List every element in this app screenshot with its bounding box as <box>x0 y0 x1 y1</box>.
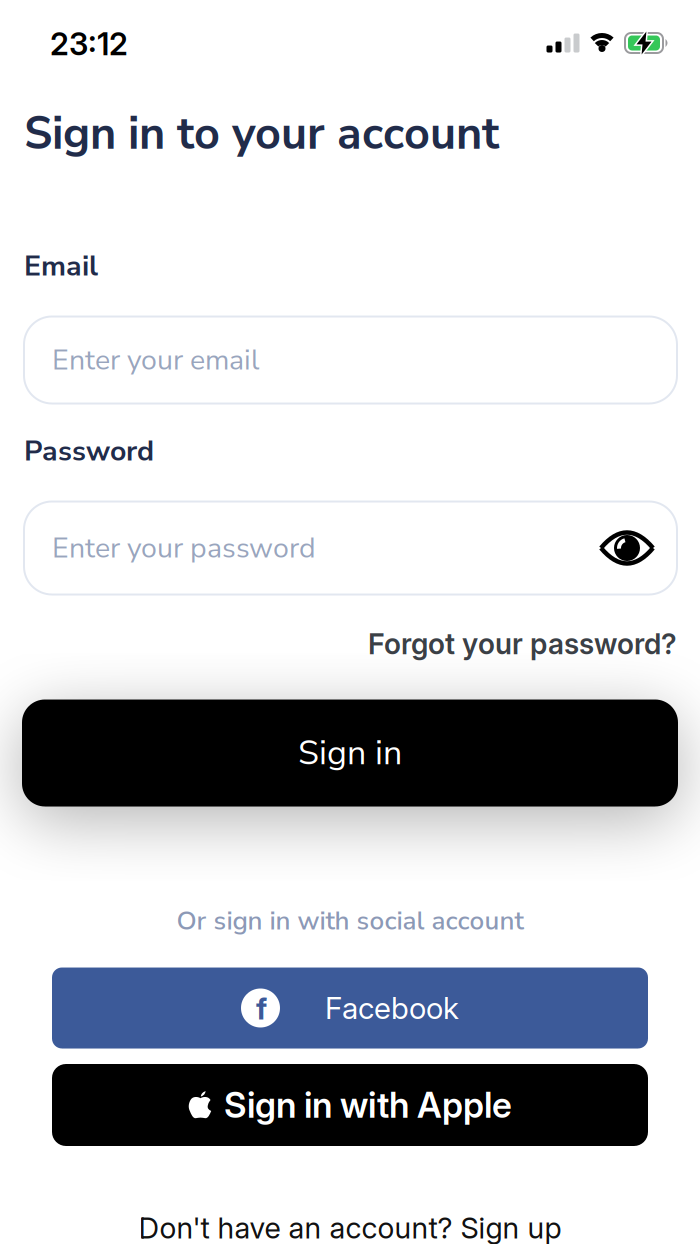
staticText: Enter your password <box>52 529 316 567</box>
staticText: Email <box>24 247 98 285</box>
button[interactable]: Sign in with Apple <box>52 1064 648 1146</box>
staticText: Don't have an account? Sign up <box>138 1210 561 1244</box>
staticText: Facebook <box>325 990 459 1026</box>
button[interactable]: Forgot your password? <box>368 627 700 661</box>
staticText: 23:12 <box>50 25 128 63</box>
staticText: Sign in <box>298 730 402 776</box>
button[interactable]: f <box>52 967 648 1048</box>
staticText: Enter your email <box>52 341 259 379</box>
button[interactable] <box>599 531 677 565</box>
button[interactable]: Sign in <box>22 699 678 806</box>
staticText: f <box>256 991 267 1027</box>
staticText: Sign in to your account <box>24 103 499 165</box>
staticText: Forgot your password? <box>368 627 677 661</box>
button[interactable]: Enter your password <box>24 501 677 594</box>
staticText: Password <box>24 432 154 470</box>
staticText: Or sign in with social account <box>176 903 523 939</box>
button[interactable]: Don't have an account? Sign up <box>138 1210 561 1244</box>
button[interactable]: Enter your email <box>24 316 677 403</box>
staticText: Sign in with Apple <box>224 1084 512 1126</box>
